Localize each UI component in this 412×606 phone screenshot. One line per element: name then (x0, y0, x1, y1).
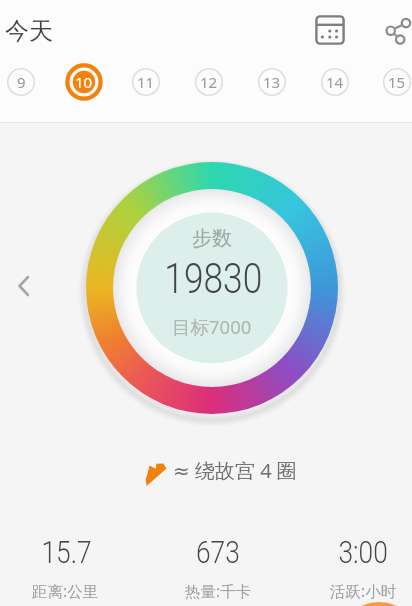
staticText: 11 (137, 72, 155, 92)
staticText: 673 (196, 534, 240, 568)
button[interactable]: 13 (252, 62, 292, 102)
button[interactable]: 10 (64, 62, 104, 102)
button[interactable]: 11 (126, 62, 166, 102)
button[interactable]: 15 (377, 62, 412, 102)
staticText: 14 (326, 72, 344, 92)
staticText: 今天 (5, 16, 53, 46)
staticText: 目标7000 (172, 314, 252, 339)
staticText: 步数 (192, 226, 232, 251)
button[interactable]: 12 (189, 62, 229, 102)
button[interactable] (380, 8, 412, 52)
staticText: ≈ 绕故宫 4 圈 (173, 457, 297, 484)
staticText: 13 (263, 72, 281, 92)
button[interactable]: 9 (1, 62, 41, 102)
staticText: 距离:公里 (32, 580, 99, 601)
staticText: 15 (388, 72, 406, 92)
staticText: 9 (17, 72, 26, 92)
staticText: 热量:千卡 (185, 580, 252, 601)
staticText: 12 (200, 72, 218, 92)
staticText: 活跃:小时 (330, 580, 397, 601)
button[interactable] (337, 602, 412, 606)
staticText: 10 (75, 72, 93, 92)
button[interactable]: 14 (315, 62, 355, 102)
button[interactable] (8, 268, 38, 304)
staticText: 3:00 (338, 534, 389, 568)
staticText: 15.7 (41, 534, 91, 568)
staticText: 19830 (164, 254, 263, 303)
button[interactable] (308, 8, 352, 52)
